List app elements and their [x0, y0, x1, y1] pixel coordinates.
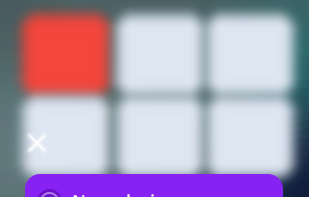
button[interactable]: Now playing: [25, 174, 283, 197]
staticText: Now playing: [72, 190, 177, 197]
button[interactable]: Close: [18, 124, 56, 162]
